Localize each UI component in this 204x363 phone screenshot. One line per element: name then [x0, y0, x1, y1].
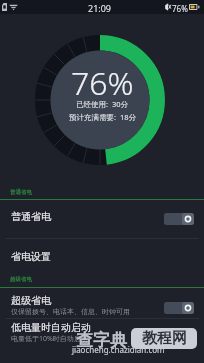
staticText: 教程网 [142, 329, 187, 348]
button[interactable]: Toggle switch [164, 302, 194, 314]
staticText: 预计充满需要: 18分 [69, 112, 136, 122]
button[interactable]: 超级省电 [0, 288, 204, 315]
staticText: 超级省电 [10, 276, 32, 283]
button[interactable]: 低电量时自动启动 [0, 320, 204, 344]
staticText: 普通省电 [11, 210, 51, 223]
staticText: 超级省电 [11, 294, 51, 307]
staticText: 21:09 [88, 2, 112, 14]
button[interactable]: 省电设置 [0, 245, 204, 267]
staticText: 省电设置 [11, 250, 51, 263]
staticText: 电量低于10%时自动启动 [11, 334, 88, 344]
staticText: jiaocheng.chazidian.com [72, 344, 165, 355]
staticText: 普通省电 [10, 189, 32, 196]
staticText: 低电量时自动启动 [11, 321, 91, 334]
button[interactable]: 普通省电 [0, 204, 204, 237]
staticText: 76% [71, 61, 134, 105]
staticText: 仅保留拨号、电话本、信息、时钟可用 [11, 307, 130, 316]
staticText: 76% [172, 3, 188, 14]
staticText: 已经使用: 30分 [76, 99, 128, 109]
button[interactable]: Toggle switch [164, 213, 194, 225]
staticText: 查字典 [76, 330, 127, 351]
